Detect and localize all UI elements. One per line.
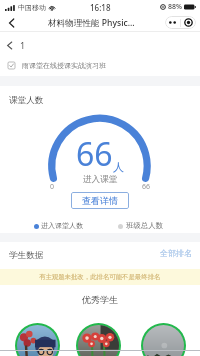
staticText: 有主观题未批改，此排名可能不是最终排名 [39, 273, 161, 281]
staticText: 班级总人数 [126, 221, 163, 230]
staticText: 66 [76, 132, 113, 176]
button[interactable]: Student avatar [143, 325, 184, 356]
button[interactable]: 全部排名 [160, 248, 192, 258]
staticText: 中国移动 [18, 3, 46, 12]
staticText: 进入课堂人数 [41, 221, 83, 230]
staticText: 66 [142, 182, 151, 192]
staticText: 材料物理性能 Physic... [48, 17, 135, 29]
staticText: 雨课堂在线授课实战演习班 [22, 61, 106, 70]
button[interactable]: Student avatar [17, 325, 58, 356]
staticText: 0 [50, 182, 55, 192]
button[interactable]: 查看详情 [71, 192, 129, 209]
staticText: 课堂人数 [9, 95, 44, 106]
button[interactable]: 1 [0, 35, 200, 55]
staticText: 学生数据 [9, 250, 44, 261]
staticText: 人 [113, 160, 124, 174]
staticText: 1 [20, 39, 26, 51]
staticText: 优秀学生 [82, 294, 118, 305]
staticText: 全部排名 [160, 248, 192, 258]
button[interactable]: Close mini program [181, 16, 196, 29]
staticText: 88% [168, 2, 182, 12]
button[interactable]: More options [165, 16, 180, 29]
staticText: 进入课堂 [83, 174, 118, 185]
staticText: 查看详情 [82, 195, 118, 206]
button[interactable]: Student avatar [78, 325, 119, 356]
staticText: 16:18 [90, 2, 111, 13]
button[interactable]: Back [4, 16, 18, 30]
